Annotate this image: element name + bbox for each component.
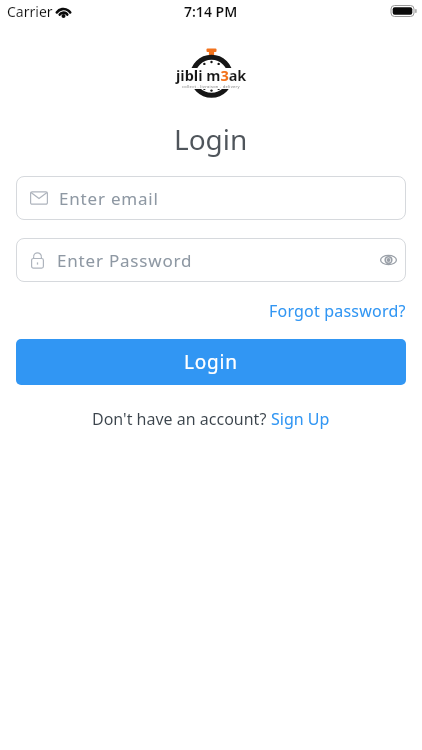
staticText: Don't have an account? xyxy=(92,408,271,430)
button[interactable]: Enter email xyxy=(16,176,406,220)
staticText: collect . livraison . delivery xyxy=(182,84,240,89)
button[interactable]: Sign Up xyxy=(271,408,330,430)
staticText: Login xyxy=(174,120,248,158)
button[interactable]: Login xyxy=(16,339,406,385)
staticText: 7:14 PM xyxy=(184,2,238,21)
staticText: Login xyxy=(184,349,238,375)
button[interactable]: Forgot password? xyxy=(269,300,406,322)
button[interactable]: Enter Password xyxy=(16,238,406,282)
staticText: Enter email xyxy=(59,187,159,210)
staticText: Carrier xyxy=(7,2,53,21)
staticText: Enter Password xyxy=(57,249,193,272)
button[interactable] xyxy=(376,248,400,272)
staticText: jibli m3ak xyxy=(176,65,247,85)
